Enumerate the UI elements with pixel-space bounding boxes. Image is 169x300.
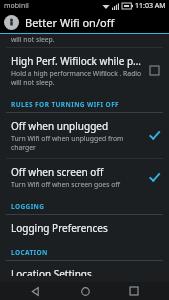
staticText: Turn Wifi off when screen goes off (11, 180, 121, 189)
staticText: Better Wifi on/off (25, 15, 115, 30)
staticText: LOGGING (11, 202, 45, 211)
staticText: High Perf. Wifilock while plug… (11, 54, 142, 68)
staticText: mobinil (4, 1, 29, 11)
button[interactable]: Logging Preferences (0, 215, 169, 241)
staticText: Logging Preferences (11, 221, 108, 235)
button[interactable]: Better Wifi on/off (0, 12, 169, 33)
staticText: will not sleep. (11, 35, 55, 44)
staticText: Location Settings (11, 267, 92, 276)
staticText: Hold a high performance Wifilock . Radio… (11, 69, 142, 87)
staticText: Turn Wifi off when unplugged from charge… (11, 134, 124, 152)
staticText: LOCATION (11, 248, 48, 257)
staticText: Off when screen off (11, 165, 104, 179)
staticText: 11:03 AM (135, 1, 166, 11)
button[interactable]: Recents (119, 282, 149, 300)
button[interactable]: Location Settings (0, 261, 169, 282)
button[interactable]: Off when screen off (0, 159, 169, 195)
button[interactable]: Off when unplugged (0, 113, 169, 158)
button[interactable]: Back (20, 282, 50, 300)
staticText: Off when unplugged (11, 119, 109, 133)
button[interactable]: High Perf. Wifilock while plug… (0, 48, 169, 93)
button[interactable]: Home (70, 282, 100, 300)
staticText: RULES FOR TURNING WIFI OFF (11, 100, 120, 109)
